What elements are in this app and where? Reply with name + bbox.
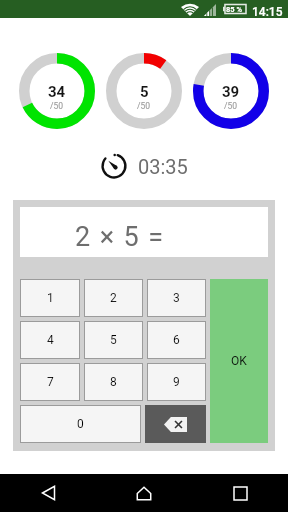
button[interactable]: Backspace — [145, 405, 206, 443]
button[interactable]: 4 — [20, 321, 80, 359]
staticText: 6 — [173, 333, 180, 347]
staticText: 5 — [110, 333, 117, 347]
staticText: 8 — [110, 375, 117, 389]
staticText: 14:15 — [252, 5, 283, 19]
staticText: 3 — [173, 291, 180, 305]
button[interactable]: 9 — [147, 363, 206, 401]
staticText: 39 — [222, 83, 240, 101]
staticText: OK — [231, 354, 247, 368]
staticText: 4 — [47, 333, 54, 347]
button[interactable]: 7 — [20, 363, 80, 401]
staticText: 2 — [110, 291, 117, 305]
staticText: 03:35 — [138, 155, 188, 178]
staticText: 34 — [48, 83, 66, 101]
staticText: /50 — [50, 101, 64, 111]
staticText: 7 — [47, 375, 54, 389]
button[interactable]: 2 — [84, 279, 143, 317]
button[interactable]: Back — [29, 474, 67, 512]
button[interactable]: 6 — [147, 321, 206, 359]
staticText: /50 — [137, 101, 151, 111]
button[interactable]: 3 — [147, 279, 206, 317]
button[interactable]: 1 — [20, 279, 80, 317]
button[interactable]: 8 — [84, 363, 143, 401]
button[interactable]: 0 — [20, 405, 141, 443]
button[interactable]: Home — [125, 474, 163, 512]
button[interactable]: OK — [210, 279, 268, 443]
button[interactable]: 5 — [84, 321, 143, 359]
staticText: 1 — [47, 291, 54, 305]
staticText: 9 — [173, 375, 180, 389]
staticText: 0 — [77, 417, 84, 431]
staticText: 2 × 5 = — [75, 221, 165, 253]
staticText: 85 % — [226, 5, 243, 14]
staticText: /50 — [224, 101, 238, 111]
staticText: 5 — [140, 83, 149, 101]
button[interactable]: Recent apps — [221, 474, 259, 512]
